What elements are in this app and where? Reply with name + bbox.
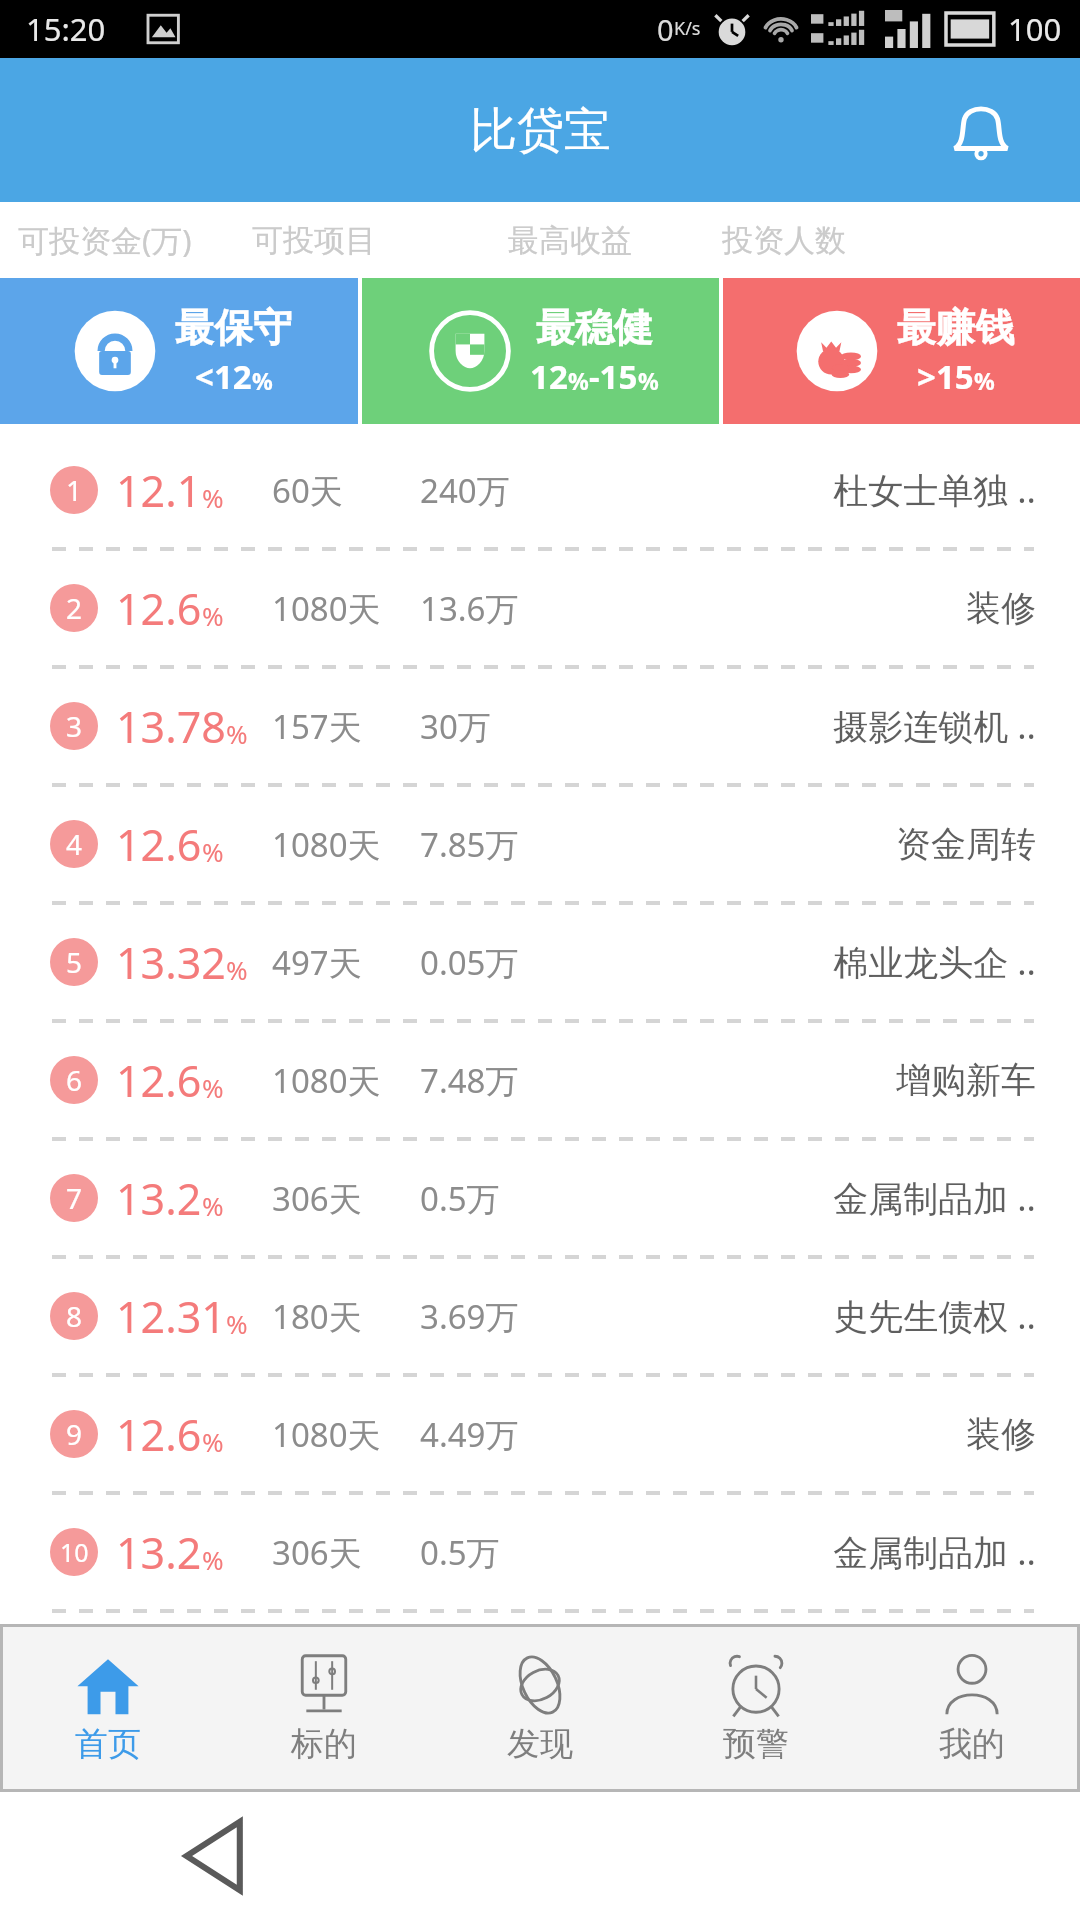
staticText: % — [202, 480, 224, 515]
staticText: 12.6 — [116, 1051, 202, 1110]
staticText: 1080天 — [272, 1058, 381, 1103]
staticText: 12.6 — [116, 579, 202, 638]
staticText: 7.85万 — [420, 822, 519, 867]
staticText: 180天 — [272, 1294, 362, 1339]
staticText: 金属制品加 .. — [833, 1174, 1036, 1222]
button[interactable]: 5 — [0, 916, 1080, 1008]
button[interactable]: 最稳健 — [362, 278, 719, 424]
staticText: 497天 — [272, 940, 362, 985]
staticText: 306天 — [272, 1530, 362, 1575]
staticText: 1080天 — [272, 822, 381, 867]
staticText: 13.2 — [116, 1523, 202, 1582]
staticText: % — [568, 365, 589, 396]
staticText: -15 — [589, 354, 638, 399]
button[interactable]: 9 — [0, 1388, 1080, 1480]
staticText: 3 — [66, 707, 83, 745]
button[interactable]: 6 — [0, 1034, 1080, 1126]
button[interactable]: 4 — [0, 798, 1080, 890]
staticText: 7.48万 — [420, 1058, 519, 1103]
staticText: 240万 — [420, 468, 510, 513]
staticText: % — [974, 365, 995, 396]
staticText: 0.5万 — [420, 1176, 500, 1221]
staticText: % — [202, 598, 224, 633]
button[interactable]: 1 — [0, 444, 1080, 536]
button[interactable]: 首页 — [0, 1624, 216, 1792]
staticText: 100 — [1008, 8, 1062, 50]
staticText: % — [226, 716, 248, 751]
staticText: 杜女士单独 .. — [833, 466, 1036, 514]
staticText: % — [638, 365, 659, 396]
staticText: 7 — [66, 1179, 83, 1217]
staticText: % — [202, 1070, 224, 1105]
staticText: 306天 — [272, 1176, 362, 1221]
staticText: 15:20 — [26, 8, 106, 50]
staticText: 30万 — [420, 704, 491, 749]
staticText: 装修 — [966, 1412, 1036, 1456]
staticText: % — [252, 365, 273, 396]
button[interactable]: 7 — [0, 1152, 1080, 1244]
staticText: 5 — [66, 943, 83, 981]
button[interactable]: 3 — [0, 680, 1080, 772]
staticText: 13.78 — [116, 697, 226, 756]
staticText: 4.49万 — [420, 1412, 519, 1457]
staticText: 预警 — [723, 1723, 789, 1765]
staticText: 可投资金(万) — [18, 219, 192, 261]
staticText: >15 — [917, 354, 974, 399]
staticText: <12 — [195, 354, 252, 399]
staticText: % — [202, 1542, 224, 1577]
staticText: 9 — [66, 1415, 83, 1453]
staticText: 最高收益 — [508, 221, 632, 260]
button[interactable]: 标的 — [216, 1624, 432, 1792]
staticText: % — [226, 952, 248, 987]
button[interactable]: 最赚钱 — [723, 278, 1080, 424]
button[interactable]: 我的 — [864, 1624, 1080, 1792]
staticText: 比贷宝 — [470, 101, 611, 160]
staticText: 可投项目 — [252, 221, 376, 260]
staticText: 10 — [60, 1535, 89, 1569]
staticText: 棉业龙头企 .. — [833, 938, 1036, 986]
staticText: % — [202, 1424, 224, 1459]
staticText: 2 — [66, 589, 83, 627]
staticText: % — [202, 1188, 224, 1223]
staticText: 1080天 — [272, 586, 381, 631]
staticText: 6 — [66, 1061, 83, 1099]
staticText: 8 — [66, 1297, 83, 1335]
staticText: 发现 — [507, 1723, 573, 1765]
staticText: 0.5万 — [420, 1530, 500, 1575]
staticText: K/s — [674, 16, 701, 41]
staticText: 增购新车 — [896, 1058, 1036, 1102]
staticText: 标的 — [291, 1723, 357, 1765]
staticText: 装修 — [966, 586, 1036, 630]
button[interactable]: 返回 — [162, 1801, 272, 1911]
staticText: 12.6 — [116, 1405, 202, 1464]
staticText: 最稳健 — [536, 303, 653, 352]
button[interactable]: 预警 — [648, 1624, 864, 1792]
button[interactable]: 10 — [0, 1506, 1080, 1598]
staticText: 3.69万 — [420, 1294, 519, 1339]
staticText: 13.32 — [116, 933, 226, 992]
staticText: 12.31 — [116, 1287, 226, 1346]
staticText: 1 — [66, 471, 83, 509]
staticText: 12.1 — [116, 461, 202, 520]
button[interactable]: 最保守 — [0, 278, 358, 424]
staticText: 投资人数 — [722, 221, 846, 260]
staticText: 0.05万 — [420, 940, 519, 985]
staticText: % — [202, 834, 224, 869]
staticText: 0 — [657, 10, 674, 49]
staticText: % — [226, 1306, 248, 1341]
staticText: 我的 — [939, 1723, 1005, 1765]
staticText: 史先生债权 .. — [833, 1292, 1036, 1340]
staticText: 12.6 — [116, 815, 202, 874]
button[interactable]: 通知 — [938, 87, 1024, 173]
staticText: 资金周转 — [896, 822, 1036, 866]
staticText: 金属制品加 .. — [833, 1528, 1036, 1576]
staticText: 12 — [530, 354, 568, 399]
staticText: 4 — [66, 825, 83, 863]
button[interactable]: 2 — [0, 562, 1080, 654]
button[interactable]: 发现 — [432, 1624, 648, 1792]
staticText: 157天 — [272, 704, 362, 749]
button[interactable]: 8 — [0, 1270, 1080, 1362]
staticText: 最保守 — [175, 303, 292, 352]
staticText: 摄影连锁机 .. — [833, 702, 1036, 750]
staticText: 1080天 — [272, 1412, 381, 1457]
